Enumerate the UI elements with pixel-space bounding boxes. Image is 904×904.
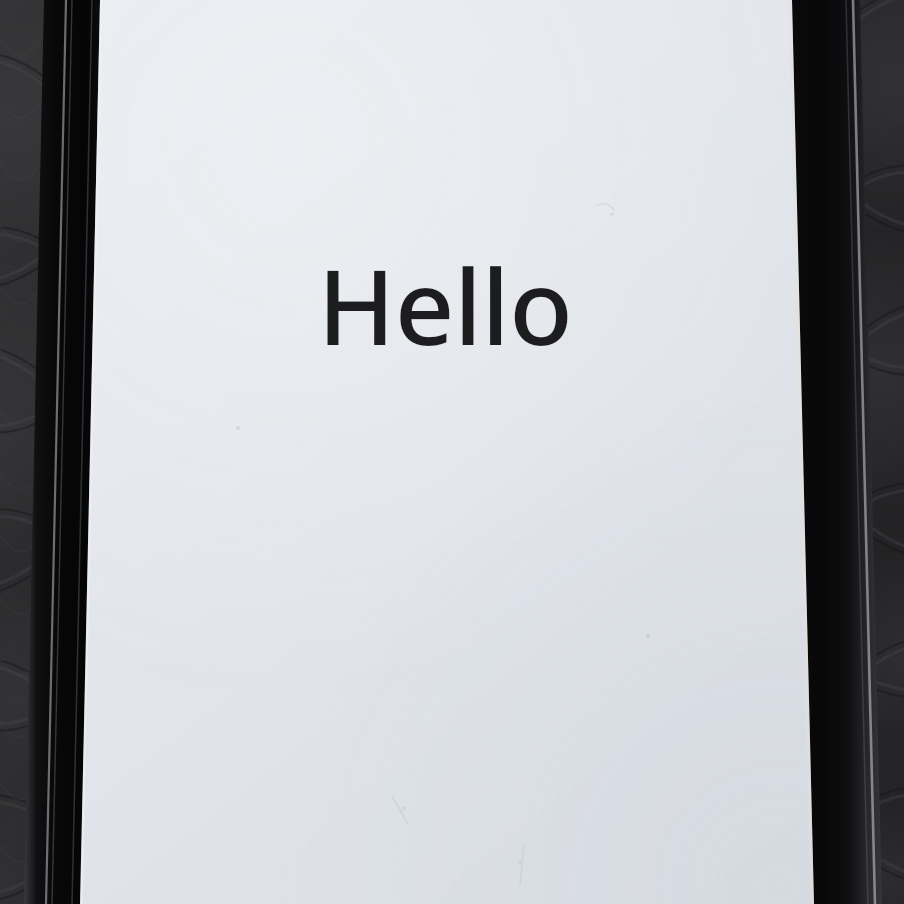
button[interactable]: Hello screen <box>0 0 904 904</box>
